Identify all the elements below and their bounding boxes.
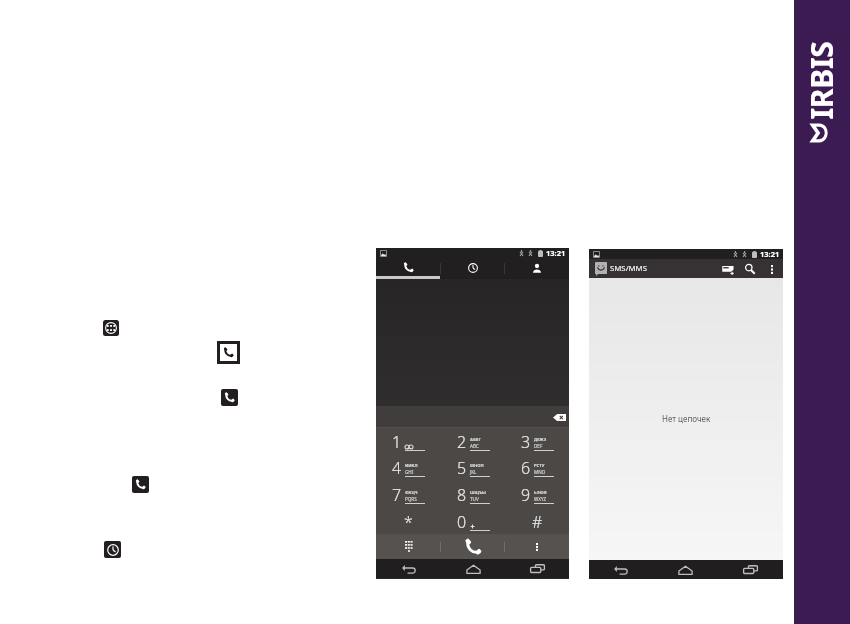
staticText: Нет цепочек — [662, 413, 711, 424]
staticText: 5 — [457, 457, 467, 479]
button[interactable]: Phone — [217, 341, 240, 364]
button[interactable]: More options — [505, 534, 569, 559]
button[interactable]: 8 — [441, 480, 505, 507]
button[interactable]: More options — [766, 263, 778, 275]
staticText: * — [404, 511, 413, 533]
staticText: 0 — [457, 511, 467, 533]
staticText: ДЕЖЗ — [534, 437, 547, 443]
button[interactable]: # — [505, 507, 569, 534]
staticText: 13:21 — [760, 249, 780, 259]
button[interactable] — [505, 258, 569, 279]
button[interactable]: Back — [376, 559, 441, 578]
button[interactable]: 1 — [376, 428, 441, 454]
button[interactable]: 2 — [441, 428, 505, 454]
staticText: ФХЦЧ — [405, 490, 418, 496]
button[interactable]: Recents — [718, 560, 783, 579]
staticText: ИЙКЛ — [405, 463, 418, 469]
button[interactable]: Home — [653, 560, 718, 579]
staticText: ABC — [470, 443, 479, 449]
button[interactable]: New message — [720, 261, 736, 277]
button[interactable]: * — [376, 507, 441, 534]
staticText: DEF — [534, 443, 543, 449]
button[interactable] — [441, 258, 505, 279]
staticText: ЬЭЮЯ — [534, 490, 547, 496]
button[interactable]: Dialpad — [376, 534, 441, 559]
staticText: 2 — [457, 431, 467, 453]
staticText: 8 — [457, 484, 467, 506]
staticText: АБВГ — [470, 437, 481, 443]
staticText: WXYZ — [534, 496, 547, 502]
staticText: 3 — [521, 431, 531, 453]
staticText: 6 — [521, 457, 531, 479]
button[interactable] — [376, 258, 441, 279]
staticText: 7 — [392, 484, 402, 506]
button[interactable]: Home — [441, 559, 505, 578]
staticText: IRBIS — [800, 41, 841, 119]
button[interactable]: Phone — [132, 476, 149, 493]
button[interactable]: 5 — [441, 454, 505, 480]
staticText: # — [532, 511, 543, 533]
button[interactable]: 6 — [505, 454, 569, 480]
button[interactable]: 7 — [376, 480, 441, 507]
button[interactable]: Back — [589, 560, 653, 579]
staticText: TUV — [470, 496, 479, 502]
button[interactable]: 9 — [505, 480, 569, 507]
staticText: 13:21 — [546, 248, 566, 258]
button[interactable]: Call — [441, 534, 505, 559]
button[interactable]: Search — [743, 262, 757, 276]
staticText: 9 — [521, 484, 531, 506]
staticText: РСТУ — [534, 463, 545, 469]
button[interactable]: Dialer — [103, 320, 119, 336]
staticText: JKL — [470, 469, 477, 475]
button[interactable]: 4 — [376, 454, 441, 480]
button[interactable]: 0 — [441, 507, 505, 534]
staticText: МНОП — [470, 463, 484, 469]
button[interactable]: 3 — [505, 428, 569, 454]
button[interactable]: Phone — [221, 389, 238, 406]
staticText: SMS/MMS — [610, 263, 647, 274]
staticText: 4 — [392, 457, 402, 479]
staticText: PQRS — [405, 496, 417, 502]
button[interactable]: Recents — [505, 559, 569, 578]
button[interactable]: Call log — [104, 541, 121, 558]
staticText: 1 — [392, 431, 402, 453]
staticText: GHI — [405, 469, 414, 475]
staticText: ШЩЪЫ — [470, 490, 486, 496]
staticText: MNO — [534, 469, 546, 475]
